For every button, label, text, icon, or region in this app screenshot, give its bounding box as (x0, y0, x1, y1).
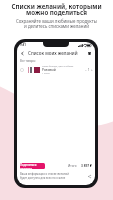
button[interactable]: Delete (87, 51, 92, 56)
button[interactable]: Share (87, 174, 92, 179)
button[interactable]: Поделиться списком (20, 163, 45, 169)
staticText: 3 897 ₽ (81, 164, 92, 168)
staticText: Сохраняйте ваши любимые продукты и делит… (4, 18, 109, 30)
staticText: Итого (68, 164, 77, 168)
staticText: Поделиться списком (20, 163, 45, 169)
staticText: Розовый (42, 68, 56, 72)
button[interactable]: Товар бренда, цвет и объём (20, 65, 93, 75)
button[interactable]: Back (20, 51, 25, 56)
button[interactable]: Back (20, 48, 92, 58)
staticText: Ваша информация о списке желаний будет д… (20, 172, 69, 180)
staticText: 9:41 (20, 43, 26, 47)
staticText: Список моих желаний (28, 50, 78, 56)
staticText: – (85, 68, 87, 72)
staticText: + (91, 68, 93, 72)
staticText: Товар бренда, цвет и объём (42, 65, 74, 68)
staticText: 1 (88, 68, 90, 72)
staticText: Списки желаний, которыми можно поделитьс… (4, 2, 109, 17)
staticText: 1 299 ₽ (42, 72, 50, 75)
staticText: Все товары (20, 59, 36, 63)
